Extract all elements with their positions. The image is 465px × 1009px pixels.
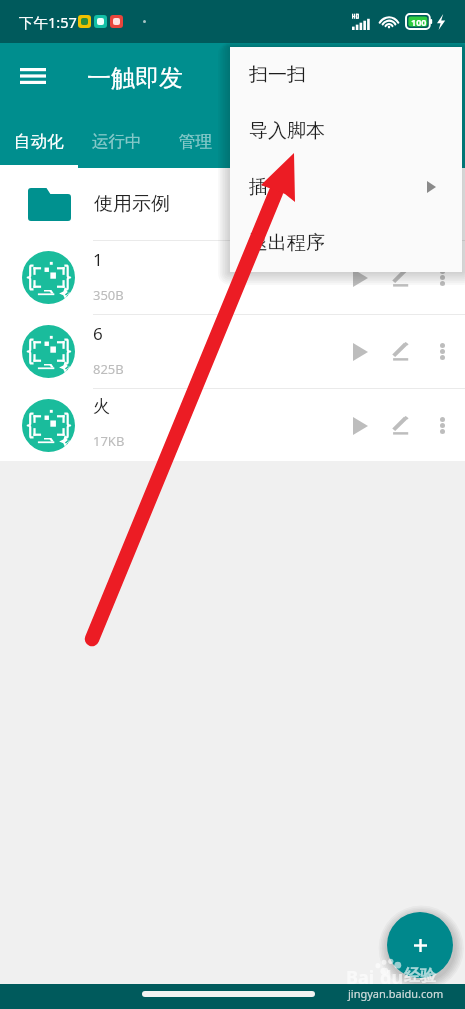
button[interactable]: 运行中 (78, 121, 156, 162)
button[interactable]: Edit (381, 257, 422, 298)
staticText: jingyan.baidu.com (348, 986, 444, 1001)
staticText: 825B (93, 360, 124, 378)
button[interactable]: 火 (0, 389, 465, 461)
staticText: 插件 (249, 175, 287, 199)
button[interactable]: More options (422, 257, 463, 298)
button[interactable]: 使用示例 (0, 168, 465, 240)
button[interactable]: 导入脚本 (230, 103, 462, 159)
staticText: 一触即发 (87, 63, 183, 93)
staticText: Bai (346, 965, 375, 990)
staticText: 下午1:57 (19, 12, 77, 32)
button[interactable]: Run (340, 331, 381, 372)
button[interactable]: More options (422, 331, 463, 372)
button[interactable]: Open navigation drawer (9, 52, 57, 100)
staticText: 扫一扫 (249, 63, 306, 87)
staticText: 自动化 (14, 131, 64, 152)
staticText: 火 (93, 396, 110, 417)
staticText: 17KB (93, 432, 125, 450)
staticText: 1 (93, 248, 103, 271)
staticText: 运行中 (92, 131, 142, 152)
other: Submenu (427, 181, 436, 193)
button[interactable]: Add script (387, 912, 453, 978)
button[interactable]: 6 (0, 315, 465, 388)
staticText: 使用示例 (94, 192, 170, 216)
button[interactable]: Run (340, 257, 381, 298)
staticText: 100 (411, 16, 427, 28)
button[interactable]: Edit (381, 405, 422, 446)
button[interactable]: 管理 (156, 121, 234, 162)
staticText: du (380, 965, 404, 990)
button[interactable]: Edit (381, 331, 422, 372)
button[interactable]: 退出程序 (230, 215, 462, 271)
staticText: 6 (93, 322, 103, 345)
staticText: 经验 (404, 966, 436, 986)
staticText: 管理 (179, 131, 212, 152)
button[interactable]: Run (340, 405, 381, 446)
button[interactable]: 插件 (230, 159, 462, 215)
button[interactable]: 扫一扫 (230, 47, 462, 103)
staticText: 350B (93, 286, 124, 304)
button[interactable]: 自动化 (0, 121, 78, 162)
button[interactable]: 1 (0, 241, 465, 314)
staticText: 退出程序 (249, 231, 325, 255)
staticText: 导入脚本 (249, 119, 325, 143)
button[interactable]: More options (422, 405, 463, 446)
